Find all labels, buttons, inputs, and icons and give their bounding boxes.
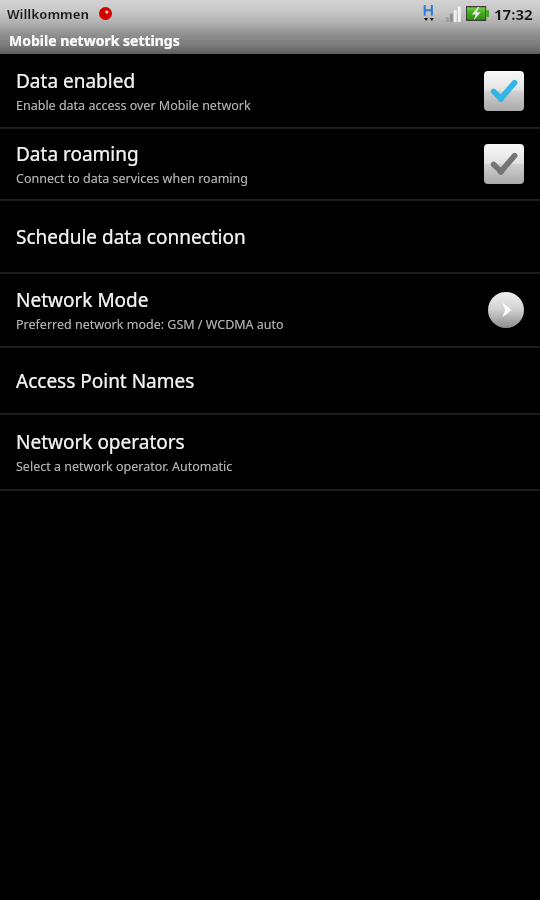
button[interactable]: Network Mode [488, 292, 524, 328]
staticText: Data enabled [16, 68, 136, 94]
staticText: Connect to data services when roaming [16, 170, 248, 187]
button[interactable]: Disabled [484, 144, 524, 184]
staticText: Enable data access over Mobile network [16, 97, 251, 114]
button[interactable]: Network Mode [0, 274, 540, 346]
button[interactable]: Network operators [0, 415, 540, 489]
staticText: Willkommen [7, 5, 89, 23]
staticText: Mobile network settings [9, 31, 180, 50]
staticText: Preferred network mode: GSM / WCDMA auto [16, 316, 284, 333]
staticText: 17:32 [494, 4, 533, 24]
button[interactable]: Access Point Names [0, 348, 540, 413]
staticText: Access Point Names [16, 368, 195, 394]
staticText: Select a network operator. Automatic [16, 458, 233, 475]
staticText: Network operators [16, 429, 185, 455]
button[interactable]: Schedule data connection [0, 201, 540, 272]
staticText: Schedule data connection [16, 224, 246, 250]
staticText: Network Mode [16, 287, 149, 313]
button[interactable]: Data enabled [0, 54, 540, 127]
button[interactable]: Data roaming [0, 129, 540, 199]
button[interactable]: Enabled [484, 71, 524, 111]
staticText: Data roaming [16, 141, 139, 167]
